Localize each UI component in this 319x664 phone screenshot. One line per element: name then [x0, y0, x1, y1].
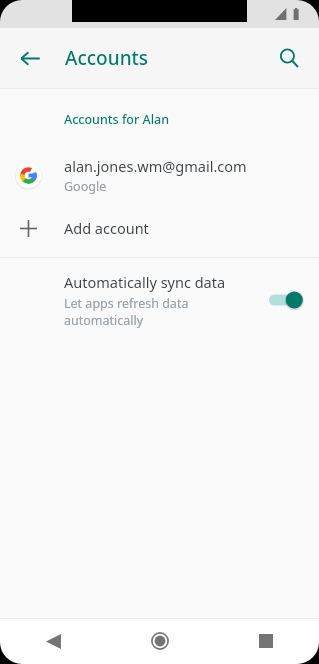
button[interactable]: Recent apps — [213, 618, 319, 664]
staticText: Automatically sync data — [64, 272, 226, 292]
button[interactable]: Back — [6, 34, 54, 82]
button[interactable]: Search — [265, 34, 313, 82]
button[interactable]: alan.jones.wm@gmail.com — [0, 146, 319, 204]
staticText: alan.jones.wm@gmail.com — [64, 156, 247, 176]
staticText: Accounts — [65, 45, 149, 71]
button[interactable]: Back — [0, 618, 107, 664]
staticText: Let apps refresh data automatically — [64, 295, 253, 328]
button[interactable]: Home — [107, 618, 213, 664]
staticText: Google — [64, 178, 107, 195]
staticText: Add account — [64, 218, 149, 238]
button[interactable]: Automatically sync data — [0, 258, 319, 342]
button[interactable]: Automatically sync data toggle — [265, 287, 305, 313]
staticText: Accounts for Alan — [64, 111, 170, 128]
button[interactable]: Add account — [0, 204, 319, 252]
